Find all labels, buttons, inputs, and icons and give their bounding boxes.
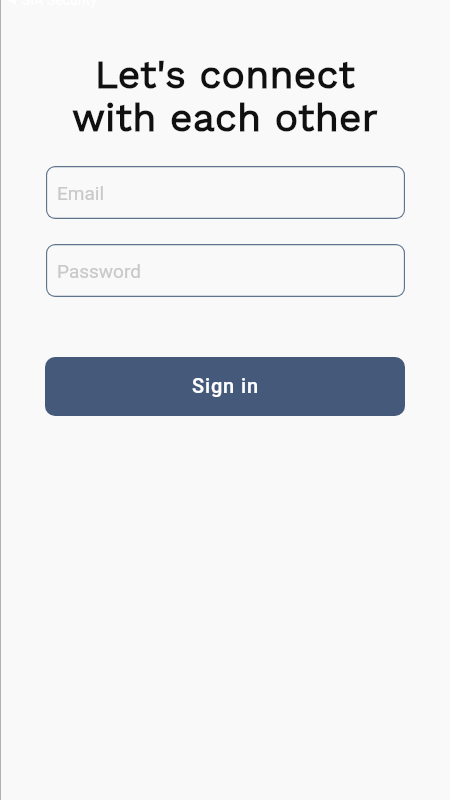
staticText: Sign in [192, 374, 259, 397]
button[interactable]: Email [46, 166, 405, 219]
staticText: Let's connect with each other [0, 52, 450, 141]
staticText: Password [57, 260, 141, 282]
button[interactable]: Sign in [45, 357, 405, 416]
staticText: Email [57, 182, 105, 204]
button[interactable]: Password [46, 244, 405, 297]
